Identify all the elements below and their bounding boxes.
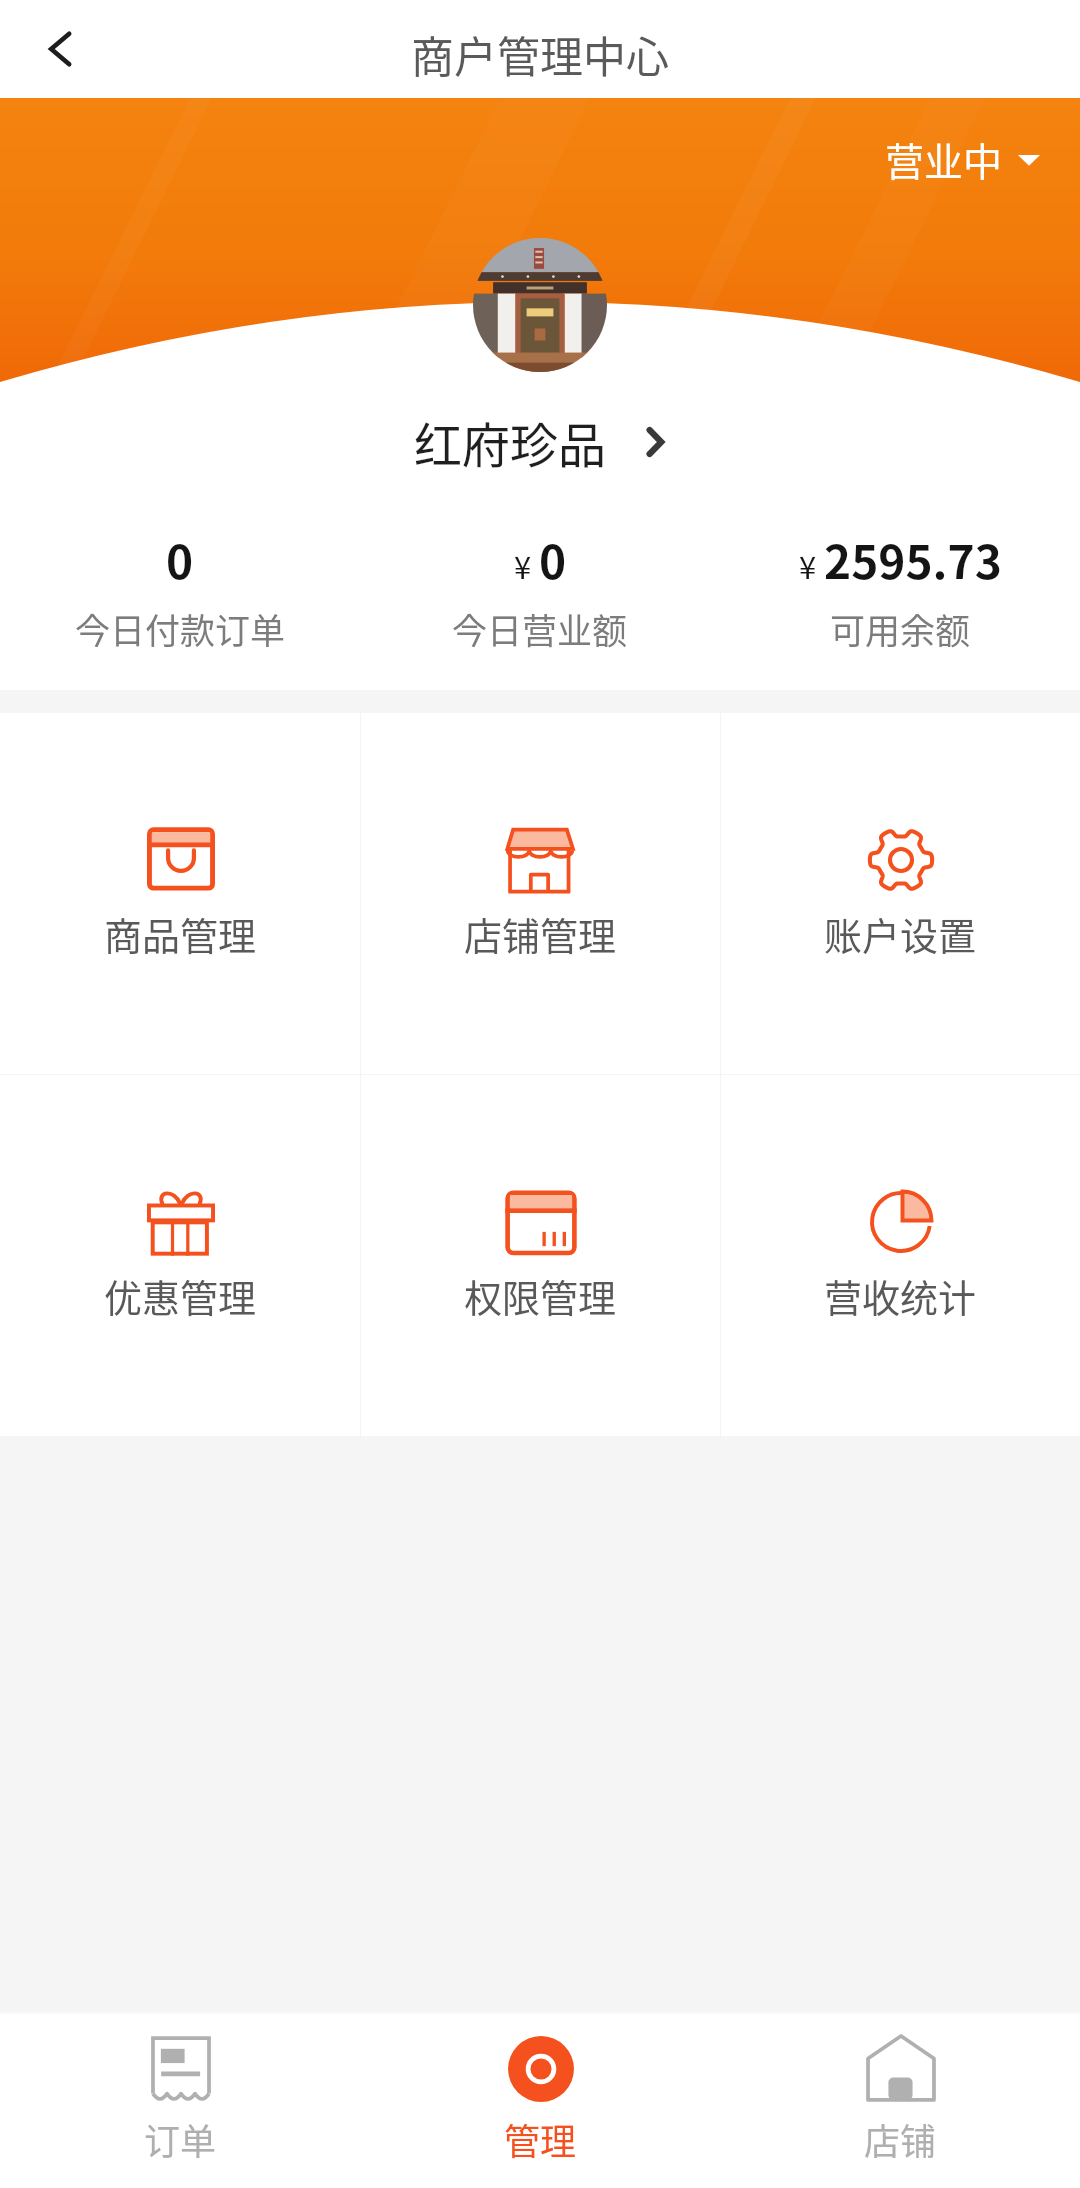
staticText: 2595.73 [824,526,1002,593]
button[interactable]: 优惠管理 [0,1075,360,1436]
staticText: 订单 [144,2113,217,2165]
staticText: ¥ [799,543,817,588]
staticText: 0 [166,526,194,593]
button[interactable]: 店铺管理 [361,713,720,1074]
staticText: 店铺 [864,2113,937,2165]
button[interactable]: 营收统计 [721,1075,1080,1436]
button[interactable]: 营业中 [877,123,1049,195]
staticText: ¥ [514,543,532,588]
button[interactable]: 管理 [360,2014,720,2188]
button[interactable]: Shop avatar [473,238,607,372]
staticText: 商户管理中心 [411,23,669,85]
staticText: 0 [539,526,567,593]
button[interactable]: 订单 [0,2014,360,2188]
staticText: 商品管理 [104,906,257,961]
button[interactable]: 红府珍品 [404,403,677,481]
staticText: 今日营业额 [452,603,628,654]
staticText: 营业中 [885,131,1003,187]
staticText: 优惠管理 [104,1268,257,1323]
button[interactable]: 商品管理 [0,713,360,1074]
button[interactable]: 店铺 [720,2014,1080,2188]
staticText: 红府珍品 [414,407,607,477]
button[interactable]: Back [18,7,102,91]
staticText: 账户设置 [824,906,977,961]
staticText: 权限管理 [464,1268,617,1323]
staticText: 可用余额 [830,603,971,654]
staticText: 今日付款订单 [75,603,286,654]
button[interactable]: 账户设置 [721,713,1080,1074]
button[interactable]: 权限管理 [361,1075,720,1436]
staticText: 店铺管理 [464,906,617,961]
staticText: 管理 [504,2113,577,2165]
staticText: 营收统计 [824,1268,977,1323]
